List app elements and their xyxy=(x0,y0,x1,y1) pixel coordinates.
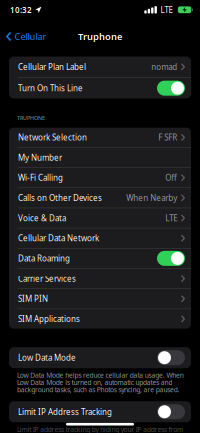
staticText: Voice & Data xyxy=(18,213,66,223)
button[interactable]: Network Selection xyxy=(9,128,191,147)
staticText: Limit IP Address Tracking xyxy=(18,406,112,417)
staticText: LTE xyxy=(160,4,172,15)
button[interactable]: SIM Applications xyxy=(9,309,191,329)
staticText: Calls on Other Devices xyxy=(18,193,102,203)
staticText: TRUPHONE xyxy=(17,114,45,122)
staticText: Cellular xyxy=(14,30,46,43)
staticText: Wi-Fi Calling xyxy=(18,172,63,183)
staticText: Low Data Mode is turned on, automatic up… xyxy=(17,378,172,387)
button[interactable]: Low Data Mode xyxy=(9,347,191,368)
staticText: nomad xyxy=(151,61,177,72)
staticText: Low Data Mode xyxy=(18,352,76,363)
staticText: Cellular Plan Label xyxy=(18,61,86,72)
staticText: Turn On This Line xyxy=(18,83,83,93)
button[interactable]: Back xyxy=(0,30,46,43)
staticText: LTE xyxy=(165,213,177,223)
button[interactable]: Voice & Data xyxy=(9,208,191,228)
staticText: Limit IP address tracking by hiding your… xyxy=(17,425,183,433)
staticText: 10:32 xyxy=(10,4,32,15)
button[interactable]: Limit IP Address Tracking xyxy=(9,401,191,422)
staticText: Cellular Data Network xyxy=(18,233,99,243)
staticText: My Number xyxy=(18,152,62,163)
button[interactable]: Calls on Other Devices xyxy=(9,188,191,208)
staticText: Off xyxy=(165,172,177,183)
staticText: Carrier Services xyxy=(18,273,76,284)
button[interactable]: Turn On This Line xyxy=(9,78,191,98)
button[interactable]: Cellular Data Network xyxy=(9,228,191,248)
staticText: SIM Applications xyxy=(18,314,80,324)
button[interactable]: Cellular Plan Label xyxy=(9,56,191,77)
staticText: F SFR xyxy=(158,132,177,143)
staticText: Data Roaming xyxy=(18,253,70,264)
button[interactable]: Carrier Services xyxy=(9,269,191,288)
button[interactable]: Data Roaming xyxy=(9,249,191,268)
staticText: SIM PIN xyxy=(18,293,48,304)
button[interactable]: SIM PIN xyxy=(9,289,191,308)
staticText: background tasks, such as Photos syncing… xyxy=(17,385,180,394)
staticText: Low Data Mode helps reduce cellular data… xyxy=(17,371,184,380)
button[interactable]: Wi-Fi Calling xyxy=(9,168,191,187)
staticText: When Nearby xyxy=(126,193,177,203)
staticText: Truphone xyxy=(78,30,122,43)
button[interactable]: My Number xyxy=(9,148,191,167)
staticText: Network Selection xyxy=(18,132,87,143)
